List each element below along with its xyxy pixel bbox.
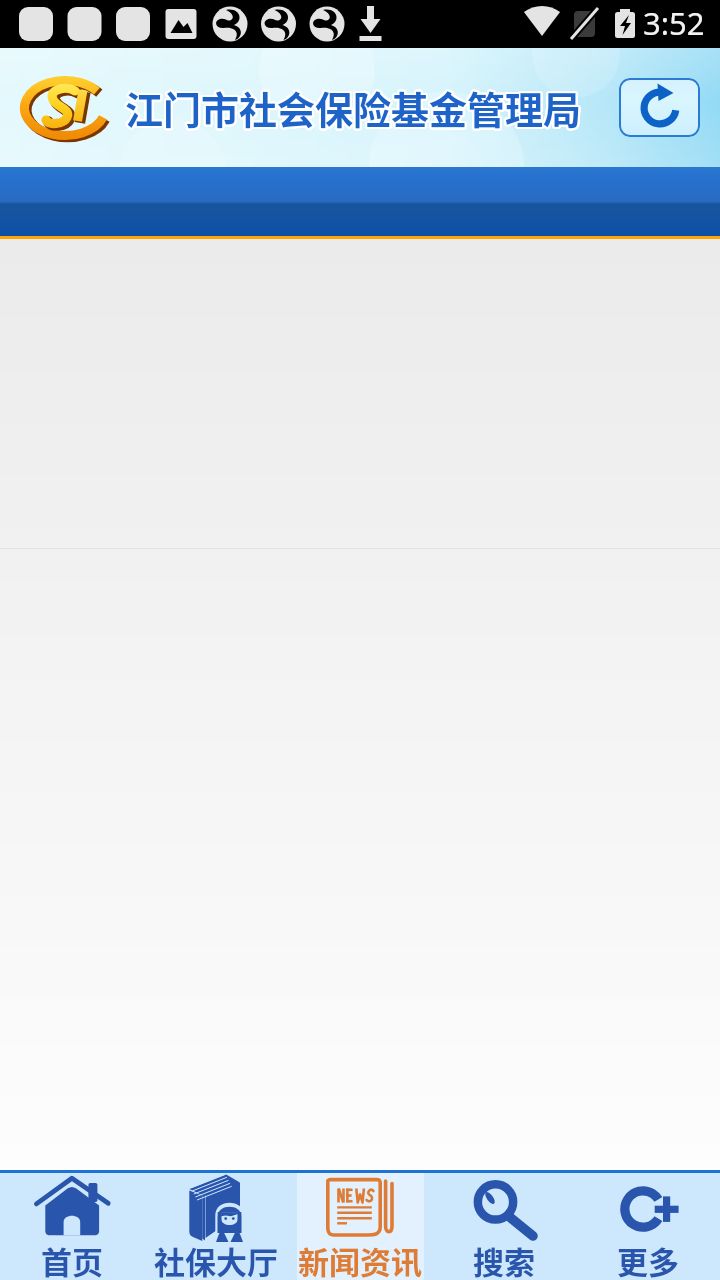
staticText: 江门市社会保险基金管理局 [125, 80, 582, 135]
staticText: 江门市社会保险基金管理局 [126, 79, 583, 134]
staticText: 江门市社会保险基金管理局 [125, 80, 582, 135]
staticText: 江门市社会保险基金管理局 [123, 79, 580, 134]
staticText: 江门市社会保险基金管理局 [123, 80, 580, 135]
staticText: 江门市社会保险基金管理局 [125, 81, 582, 136]
staticText: 江门市社会保险基金管理局 [126, 81, 583, 136]
staticText: 江门市社会保险基金管理局 [126, 80, 583, 135]
staticText: 新闻资讯 [298, 1238, 422, 1280]
button[interactable]: 新闻资讯 [288, 1173, 432, 1280]
staticText: 江门市社会保险基金管理局 [125, 82, 582, 137]
staticText: 社保大厅 [154, 1238, 278, 1280]
staticText: 江门市社会保险基金管理局 [125, 78, 582, 133]
button[interactable]: 社保大厅 [144, 1173, 288, 1280]
button[interactable]: 更多 [576, 1173, 720, 1280]
staticText: 江门市社会保险基金管理局 [124, 78, 581, 133]
staticText: 江门市社会保险基金管理局 [125, 79, 582, 134]
staticText: 江门市社会保险基金管理局 [127, 79, 584, 134]
button[interactable]: Refresh [619, 78, 700, 137]
staticText: 江门市社会保险基金管理局 [124, 81, 581, 136]
staticText: 江门市社会保险基金管理局 [123, 81, 580, 136]
staticText: 江门市社会保险基金管理局 [126, 82, 583, 137]
staticText: 江门市社会保险基金管理局 [124, 82, 581, 137]
staticText: 更多 [617, 1238, 679, 1280]
staticText: 江门市社会保险基金管理局 [126, 78, 583, 133]
staticText: 江门市社会保险基金管理局 [124, 80, 581, 135]
staticText: 3:52 [643, 2, 705, 44]
staticText: 江门市社会保险基金管理局 [124, 79, 581, 134]
button[interactable]: 首页 [0, 1173, 144, 1280]
staticText: 搜索 [473, 1238, 535, 1280]
staticText: 江门市社会保险基金管理局 [127, 81, 584, 136]
staticText: 江门市社会保险基金管理局 [127, 80, 584, 135]
staticText: 首页 [41, 1238, 103, 1280]
button[interactable]: 搜索 [432, 1173, 576, 1280]
